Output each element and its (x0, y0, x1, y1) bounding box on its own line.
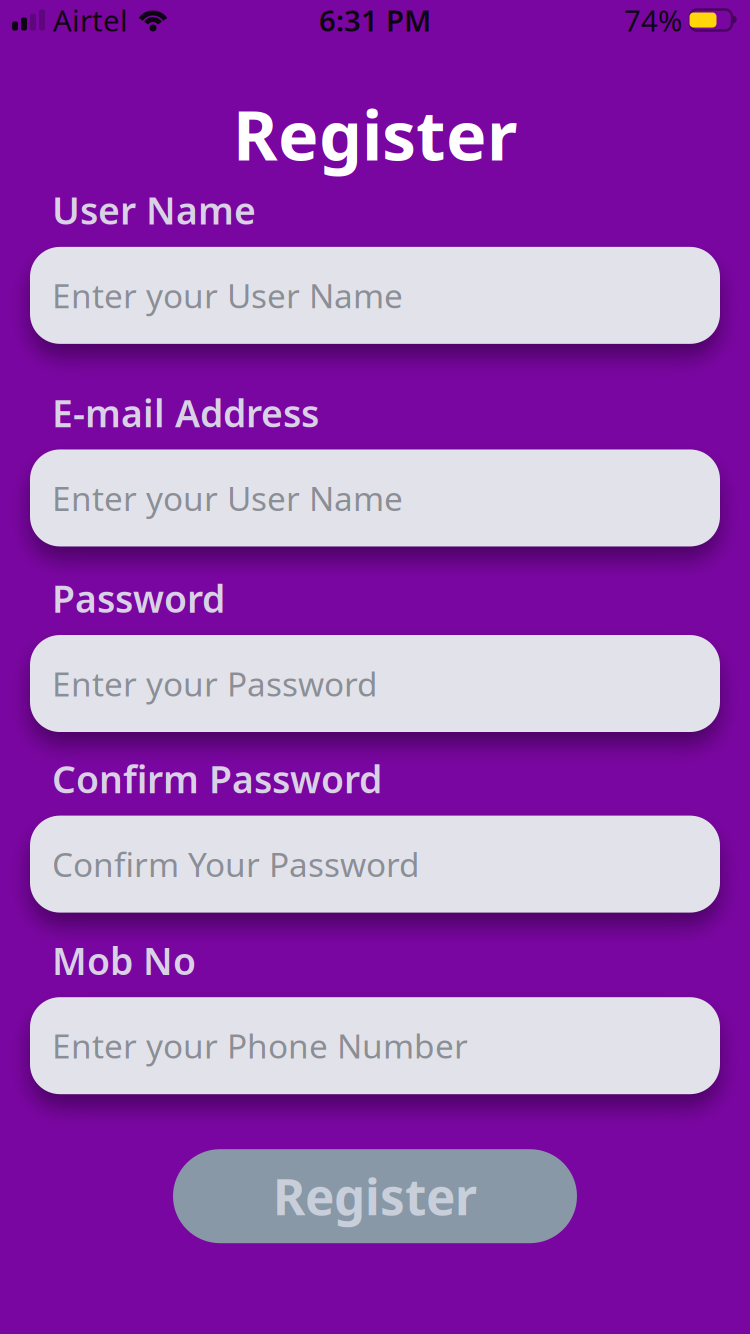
button[interactable]: Enter your User Name (30, 247, 720, 344)
staticText: Enter your Phone Number (52, 1024, 468, 1068)
staticText: User Name (52, 185, 256, 235)
button[interactable]: Enter your User Name (30, 449, 720, 546)
staticText: Enter your User Name (52, 476, 403, 520)
staticText: Register (273, 1163, 477, 1229)
staticText: E-mail Address (52, 388, 319, 437)
button[interactable]: Enter your Phone Number (30, 997, 720, 1094)
staticText: Mob No (52, 936, 196, 985)
staticText: Confirm Your Password (52, 842, 420, 886)
button[interactable]: Register (173, 1149, 577, 1243)
staticText: 74% (624, 0, 682, 39)
staticText: Enter your User Name (52, 273, 403, 317)
staticText: Enter your Password (52, 661, 378, 706)
button[interactable]: Enter your Password (30, 635, 720, 732)
staticText: 6:31 PM (319, 0, 431, 39)
button[interactable]: Confirm Your Password (30, 816, 720, 913)
staticText: Airtel (53, 0, 128, 39)
staticText: Confirm Password (52, 754, 382, 804)
staticText: Password (52, 573, 225, 623)
staticText: Register (233, 89, 517, 179)
